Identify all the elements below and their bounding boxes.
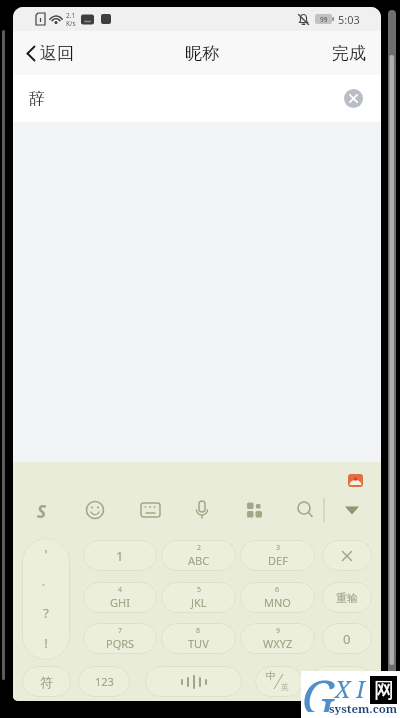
staticText: ' [22, 545, 70, 563]
staticText: DEF [268, 553, 288, 568]
button[interactable]: 4 [83, 582, 157, 613]
button[interactable]: 3 [240, 540, 315, 571]
staticText: WXYZ [263, 636, 293, 651]
staticText: 6 [275, 585, 280, 595]
staticText: X I [335, 673, 365, 704]
button[interactable]: 符 [22, 666, 71, 697]
staticText: 1 [116, 547, 124, 565]
staticText: 4 [118, 585, 123, 595]
staticText: 符 [40, 674, 53, 690]
button[interactable]: 返回 [26, 43, 74, 64]
staticText: PQRS [106, 636, 135, 651]
staticText: S [37, 500, 47, 520]
staticText: TUV [188, 636, 209, 651]
staticText: 0 [343, 630, 351, 648]
staticText: JKL [191, 595, 207, 610]
button[interactable] [22, 538, 70, 660]
button[interactable] [145, 666, 242, 697]
button[interactable] [322, 540, 372, 571]
button[interactable]: 8 [161, 623, 236, 654]
staticText: 重输 [336, 591, 358, 605]
staticText: 8 [196, 626, 201, 636]
staticText: 9 [276, 626, 281, 636]
staticText: 辞 [29, 89, 45, 109]
button[interactable]: 重输 [322, 582, 372, 613]
button[interactable]: 6 [240, 582, 315, 613]
staticText: 中 [266, 669, 276, 682]
button[interactable]: 9 [240, 623, 315, 654]
staticText: 5:03 [338, 12, 360, 27]
staticText: 。 [22, 576, 70, 587]
staticText: 完成 [332, 43, 366, 64]
staticText: G [302, 665, 336, 712]
button[interactable]: 123 [78, 666, 130, 697]
staticText: 123 [95, 674, 114, 689]
staticText: 返回 [40, 43, 74, 64]
staticText: 2.1 K/s [66, 11, 76, 28]
button[interactable]: 完成 [332, 43, 366, 64]
staticText: GHI [110, 595, 130, 610]
button[interactable]: 1 [83, 540, 157, 571]
staticText: 99 [320, 15, 328, 24]
staticText: system.com [329, 701, 398, 717]
button[interactable]: 5 [161, 582, 236, 613]
staticText: 2 [197, 543, 202, 553]
button[interactable]: 7 [83, 623, 157, 654]
staticText: 3 [276, 543, 281, 553]
staticText: ABC [188, 553, 210, 568]
staticText: 7 [118, 626, 123, 636]
staticText: 英 [281, 682, 289, 692]
staticText: 昵称 [185, 43, 219, 64]
staticText: 网 [374, 678, 394, 703]
staticText: ? [22, 604, 70, 622]
button[interactable] [344, 89, 363, 108]
staticText: ! [22, 634, 70, 652]
button[interactable]: 中 [255, 666, 303, 697]
button[interactable]: 2 [161, 540, 236, 571]
staticText: 5 [197, 585, 202, 595]
staticText: MNO [264, 595, 291, 610]
button[interactable]: 0 [322, 623, 372, 654]
button[interactable] [310, 666, 372, 697]
